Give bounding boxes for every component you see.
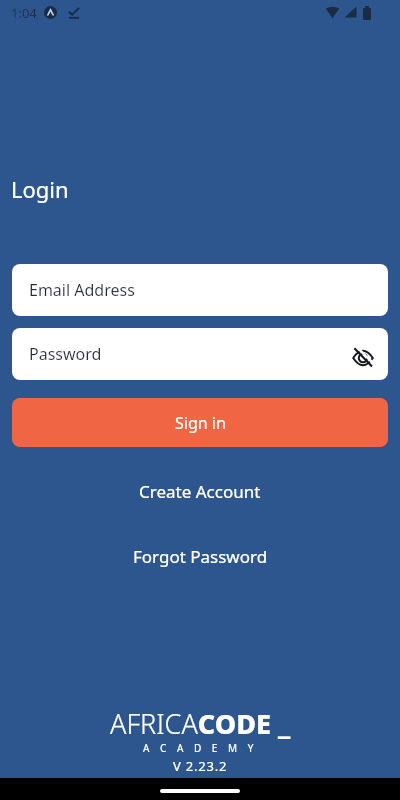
staticText: Password bbox=[29, 343, 102, 365]
button[interactable]: Password bbox=[12, 328, 388, 380]
staticText: Forgot Password bbox=[133, 545, 268, 568]
staticText: Email Address bbox=[29, 279, 135, 301]
button[interactable]: Create Account bbox=[131, 472, 269, 511]
staticText: V 2.23.2 bbox=[173, 757, 228, 775]
button[interactable]: Forgot Password bbox=[125, 537, 276, 576]
button[interactable] bbox=[349, 340, 377, 368]
staticText: AFRICACODE _ bbox=[110, 705, 291, 742]
staticText: A C A D E M Y bbox=[143, 741, 258, 755]
button[interactable]: Email Address bbox=[12, 264, 388, 316]
staticText: Sign in bbox=[175, 412, 226, 434]
staticText: Create Account bbox=[139, 480, 261, 503]
staticText: Login bbox=[11, 174, 69, 204]
button[interactable]: Sign in bbox=[12, 398, 388, 447]
staticText: 1:04 bbox=[11, 4, 37, 22]
